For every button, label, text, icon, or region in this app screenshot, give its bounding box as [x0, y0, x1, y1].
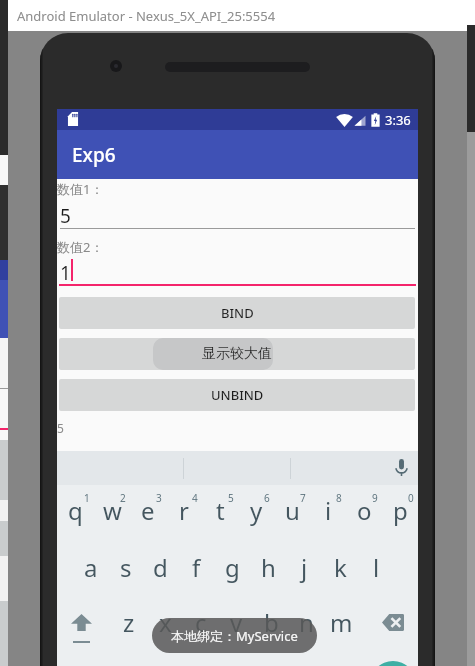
button[interactable]: 5: [202, 485, 238, 540]
button[interactable]: 6: [238, 485, 274, 540]
button[interactable]: 9: [346, 485, 382, 540]
staticText: z: [123, 606, 135, 639]
staticText: s: [120, 551, 132, 584]
staticText: 1: [60, 260, 71, 286]
staticText: r: [179, 494, 189, 527]
button[interactable]: 8: [310, 485, 346, 540]
button[interactable]: 1: [57, 485, 94, 540]
staticText: 3: [156, 491, 162, 505]
button[interactable]: j: [286, 540, 322, 595]
staticText: u: [285, 494, 300, 527]
button[interactable]: b: [254, 595, 289, 650]
staticText: f: [192, 551, 201, 584]
staticText: w: [103, 494, 122, 527]
staticText: n: [299, 606, 314, 639]
button[interactable]: k: [322, 540, 358, 595]
staticText: 7: [300, 491, 306, 505]
staticText: 9: [372, 491, 378, 505]
staticText: v: [230, 606, 243, 639]
button[interactable]: 7: [274, 485, 310, 540]
button[interactable]: g: [214, 540, 250, 595]
staticText: 本地绑定：MyService: [171, 627, 298, 645]
staticText: 显示较大值: [202, 345, 272, 363]
staticText: 6: [264, 491, 270, 505]
staticText: e: [141, 494, 155, 527]
button[interactable]: a: [73, 540, 108, 595]
staticText: 0: [408, 491, 414, 505]
button[interactable]: v: [219, 595, 254, 650]
button[interactable]: 2: [94, 485, 130, 540]
button[interactable]: BIND: [59, 297, 415, 329]
button[interactable]: m: [324, 595, 359, 650]
staticText: b: [264, 606, 279, 639]
staticText: 3:36: [385, 111, 411, 129]
button[interactable]: z: [111, 595, 147, 650]
staticText: 5: [57, 420, 64, 436]
staticText: Android Emulator - Nexus_5X_API_25:5554: [17, 7, 276, 25]
staticText: a: [84, 551, 98, 584]
staticText: 1: [84, 491, 90, 505]
button[interactable]: l: [358, 540, 394, 595]
staticText: 数值2：: [57, 238, 104, 256]
button[interactable]: Shift: [57, 595, 111, 650]
staticText: 8: [336, 491, 342, 505]
button[interactable]: 4: [166, 485, 202, 540]
button[interactable]: h: [250, 540, 286, 595]
button[interactable]: Enter: [370, 661, 416, 666]
staticText: i: [325, 494, 332, 527]
staticText: 5: [228, 491, 234, 505]
staticText: j: [301, 551, 308, 584]
button[interactable]: n: [289, 595, 324, 650]
staticText: q: [68, 494, 83, 527]
button[interactable]: 显示较大值: [59, 338, 415, 370]
staticText: 4: [192, 491, 198, 505]
staticText: y: [250, 494, 263, 527]
button[interactable]: s: [108, 540, 143, 595]
button[interactable]: UNBIND: [59, 379, 415, 411]
staticText: m: [330, 606, 353, 639]
button[interactable]: x: [147, 595, 183, 650]
staticText: k: [334, 551, 347, 584]
staticText: t: [216, 494, 225, 527]
staticText: 5: [60, 203, 71, 229]
staticText: Exp6: [72, 142, 116, 168]
staticText: p: [393, 494, 408, 527]
staticText: d: [153, 551, 168, 584]
button[interactable]: 3: [130, 485, 166, 540]
staticText: g: [225, 551, 240, 584]
button[interactable]: Backspace: [359, 595, 418, 650]
button[interactable]: 0: [382, 485, 418, 540]
staticText: l: [373, 551, 380, 584]
staticText: h: [261, 551, 276, 584]
staticText: o: [357, 494, 372, 527]
staticText: UNBIND: [211, 386, 264, 404]
staticText: c: [195, 606, 207, 639]
staticText: BIND: [221, 304, 254, 322]
button[interactable]: c: [183, 595, 219, 650]
button[interactable]: f: [178, 540, 214, 595]
staticText: 数值1：: [57, 180, 104, 198]
staticText: 2: [120, 491, 126, 505]
staticText: x: [159, 606, 172, 639]
button[interactable]: d: [143, 540, 178, 595]
